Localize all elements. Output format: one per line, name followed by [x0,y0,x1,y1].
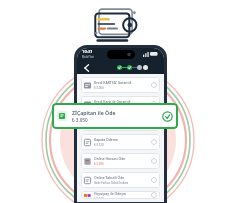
button[interactable]: Online Taksitli Öde [81,172,160,188]
staticText: Kredi Kartı ile Garantili [94,99,131,104]
button[interactable]: ZİÇapitan ile Öde [52,103,178,129]
button[interactable]: Online Havuzu Öde [81,153,160,169]
button[interactable]: Back [81,63,91,73]
staticText: 10:31 [82,49,93,55]
staticText: Hepsipay ile Ödeyin [94,191,126,196]
staticText: Vade Farksız Taksit İmkanı [94,181,129,185]
staticText: ₺ 3.090 [94,162,104,166]
staticText: ₺ 3.040 [94,197,104,199]
button[interactable]: Havale / EFT ile Ödeme [81,115,160,131]
staticText: Online Taksitli Öde [94,175,125,180]
button[interactable]: Kapıda Ödeme [81,134,160,150]
staticText: ₺ 3.050 [72,117,88,123]
staticText: ₺ 3.120 [94,143,104,147]
staticText: ₺ 3.060 [94,86,104,90]
button[interactable]: Kredi KARTSIZ Garantili [81,77,160,93]
staticText: Kapıda Ödeme [94,137,118,142]
button[interactable]: Hepsipay ile Ödeyin [81,191,160,199]
staticText: Mobil Veri [82,55,95,59]
staticText: Online Havuzu Öde [94,156,126,161]
staticText: ZİÇapitan ile Öde [72,109,116,116]
staticText: Kredi KARTSIZ Garantili [94,80,132,85]
staticText: ₺ 3.050 [94,124,104,128]
button[interactable]: Kredi Kartı ile Garantili [81,96,160,112]
